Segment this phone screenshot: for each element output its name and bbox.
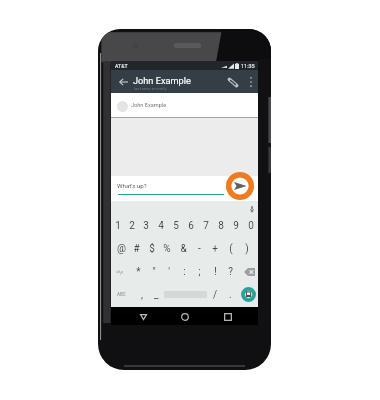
button[interactable]: @	[114, 237, 129, 260]
staticText: 3	[143, 220, 149, 232]
button[interactable]: Space	[161, 283, 209, 306]
button[interactable]: Recent apps	[219, 308, 237, 325]
button[interactable]: #	[129, 237, 144, 260]
button[interactable]: 0	[243, 214, 258, 237]
staticText: :	[183, 266, 186, 278]
button[interactable]: *	[131, 260, 146, 283]
staticText: ,	[141, 289, 143, 301]
button[interactable]: .	[223, 283, 238, 306]
button[interactable]: Back	[134, 308, 152, 325]
button[interactable]: Send	[226, 172, 254, 200]
staticText: ?	[228, 266, 233, 278]
staticText: _	[154, 289, 159, 301]
staticText: AT&T	[115, 63, 128, 69]
button[interactable]: Backspace	[240, 260, 258, 283]
staticText: 0	[248, 220, 254, 232]
button[interactable]: =\<	[112, 260, 128, 283]
button[interactable]: -	[191, 237, 207, 260]
staticText: &	[180, 243, 187, 255]
button[interactable]: Attach	[225, 74, 241, 90]
button[interactable]: Enter	[239, 283, 258, 306]
staticText: #	[133, 243, 140, 255]
staticText: )	[245, 243, 249, 255]
staticText: 2	[129, 220, 135, 232]
button[interactable]: 9	[228, 214, 243, 237]
button[interactable]: (	[223, 237, 239, 260]
button[interactable]: ABC	[113, 283, 130, 306]
button[interactable]: '	[161, 260, 176, 283]
staticText: What's up?	[117, 182, 147, 189]
button[interactable]: _	[149, 283, 164, 306]
staticText: =\<	[116, 269, 124, 275]
staticText: %	[163, 243, 171, 255]
button[interactable]: 7	[198, 214, 213, 237]
button[interactable]: %	[159, 237, 175, 260]
staticText: +	[212, 243, 218, 255]
staticText: John Example	[131, 102, 167, 109]
button[interactable]: )	[239, 237, 255, 260]
staticText: (	[229, 243, 233, 255]
button[interactable]: 4	[153, 214, 168, 237]
staticText: -	[198, 243, 201, 255]
staticText: !	[214, 266, 217, 278]
staticText: 8	[218, 220, 224, 232]
button[interactable]: 6	[183, 214, 198, 237]
button[interactable]: ?	[223, 260, 238, 283]
button[interactable]: /	[208, 283, 223, 306]
button[interactable]: &	[175, 237, 191, 260]
staticText: $	[149, 243, 155, 255]
staticText: /	[213, 289, 218, 301]
button[interactable]: Home	[176, 308, 194, 325]
button[interactable]: 2	[125, 214, 139, 237]
button[interactable]: "	[146, 260, 161, 283]
button[interactable]: 1	[111, 214, 125, 237]
button[interactable]: 8	[213, 214, 228, 237]
button[interactable]: More options	[243, 74, 259, 90]
button[interactable]: +	[207, 237, 223, 260]
button[interactable]: John Example	[111, 93, 258, 117]
staticText: John Example	[133, 75, 191, 86]
button[interactable]: ,	[134, 283, 149, 306]
staticText: 5	[173, 220, 179, 232]
button[interactable]: :	[177, 260, 192, 283]
staticText: 6	[188, 220, 194, 232]
staticText: 9	[233, 220, 239, 232]
button[interactable]: 3	[139, 214, 153, 237]
staticText: *	[136, 266, 141, 278]
staticText: '	[168, 266, 170, 278]
button[interactable]: 5	[168, 214, 183, 237]
staticText: ABC	[117, 292, 126, 297]
staticText: 7	[203, 220, 209, 232]
button[interactable]: Voice input	[250, 206, 254, 212]
button[interactable]: $	[144, 237, 159, 260]
button[interactable]: ;	[192, 260, 207, 283]
staticText: @	[117, 243, 126, 255]
staticText: 4	[158, 220, 164, 232]
staticText: last seen recently	[134, 86, 167, 91]
staticText: 1	[115, 220, 121, 232]
staticText: .	[229, 289, 232, 301]
staticText: "	[152, 266, 156, 278]
staticText: 11:35	[241, 63, 255, 69]
staticText: ;	[198, 266, 201, 278]
button[interactable]: Back	[115, 73, 132, 90]
button[interactable]: !	[208, 260, 223, 283]
